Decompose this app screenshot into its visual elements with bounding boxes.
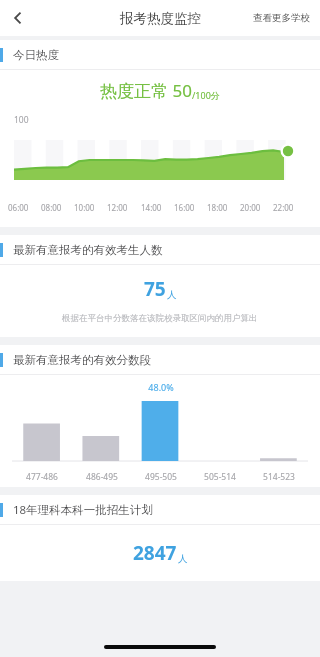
staticText: 报考热度监控 — [120, 10, 201, 27]
staticText: /100分 — [192, 89, 220, 101]
staticText: 08:00 — [41, 202, 62, 213]
staticText: 75 — [144, 276, 166, 302]
staticText: 今日热度 — [13, 48, 59, 62]
staticText: 热度正常 50 — [100, 79, 192, 102]
staticText: 18:00 — [207, 202, 228, 213]
staticText: 16:00 — [174, 202, 195, 213]
button[interactable]: Back — [0, 0, 36, 36]
staticText: 14:00 — [141, 202, 162, 213]
staticText: 10:00 — [74, 202, 95, 213]
staticText: 22:00 — [273, 202, 294, 213]
staticText: 505-514 — [204, 471, 236, 483]
staticText: 12:00 — [107, 202, 128, 213]
staticText: 18年理科本科一批招生计划 — [13, 502, 153, 518]
staticText: 最新有意报考的有效分数段 — [13, 353, 151, 367]
button[interactable]: 查看更多学校 — [243, 6, 320, 30]
staticText: 495-505 — [145, 471, 177, 483]
staticText: 20:00 — [240, 202, 261, 213]
staticText: 477-486 — [26, 471, 58, 483]
staticText: 查看更多学校 — [253, 12, 310, 24]
staticText: 100 — [14, 114, 29, 126]
staticText: 514-523 — [263, 471, 295, 483]
staticText: 2847 — [133, 540, 177, 566]
staticText: 根据在平台中分数落在该院校录取区间内的用户算出 — [62, 313, 258, 324]
staticText: 06:00 — [8, 202, 29, 213]
staticText: 486-495 — [86, 471, 118, 483]
staticText: 人 — [178, 553, 188, 565]
staticText: 最新有意报考的有效考生人数 — [13, 243, 163, 257]
staticText: 人 — [167, 289, 177, 301]
staticText: 48.0% — [148, 381, 174, 393]
